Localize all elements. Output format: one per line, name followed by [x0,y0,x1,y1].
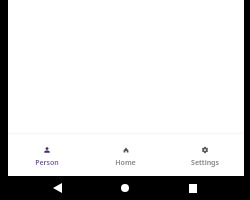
button[interactable]: Settings [165,135,244,176]
button[interactable]: Recent apps [182,176,204,200]
button[interactable]: Home [86,135,165,176]
staticText: Person [35,158,59,168]
staticText: Settings [191,158,219,168]
button[interactable]: Back [46,176,68,200]
button[interactable]: Person [8,135,86,176]
staticText: Home [115,158,136,168]
button[interactable]: Home [114,176,136,200]
